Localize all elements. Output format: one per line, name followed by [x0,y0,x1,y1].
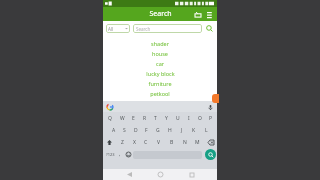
staticText: T [154,115,157,122]
button[interactable]: Emoji [124,148,133,161]
button[interactable]: M [191,136,204,148]
staticText: Search [149,9,172,19]
staticText: F [145,127,148,134]
button[interactable]: Voice input [206,103,214,111]
staticText: Q [108,115,112,122]
staticText: O [198,115,202,122]
button[interactable]: house [103,48,217,58]
staticText: K [192,127,196,134]
button[interactable]: V [152,136,165,148]
button[interactable]: D [130,124,141,136]
staticText: D [134,127,138,134]
button[interactable]: ?123 [104,148,116,161]
button[interactable]: K [188,124,200,136]
button[interactable]: Ad tab [212,94,219,103]
staticText: N [183,139,187,146]
button[interactable]: Cart [193,10,202,19]
button[interactable]: Google [106,103,114,111]
staticText: All [108,26,114,32]
staticText: shader [151,40,169,47]
staticText: B [170,139,174,146]
staticText: J [181,127,183,134]
staticText: L [205,127,208,134]
button[interactable]: I [183,112,194,124]
staticText: E [132,115,135,122]
staticText: R [143,115,147,122]
button[interactable]: T [150,112,161,124]
staticText: Search [136,26,151,32]
staticText: house [152,50,168,57]
button[interactable]: Z [116,136,128,148]
staticText: ?123 [106,152,115,157]
button[interactable]: lucky block [103,68,217,78]
button[interactable]: E [128,112,139,124]
button[interactable]: L [200,124,212,136]
staticText: Y [165,115,168,122]
button[interactable]: Search [133,24,202,33]
staticText: V [157,139,161,146]
button[interactable]: , [116,148,124,161]
staticText: H [168,127,172,134]
staticText: C [144,139,148,146]
button[interactable]: Home [154,169,166,180]
button[interactable]: J [176,124,188,136]
staticText: furniture [148,80,172,87]
button[interactable]: H [164,124,176,136]
button[interactable]: X [128,136,140,148]
button[interactable]: More options [205,10,214,19]
staticText: lucky block [146,70,175,77]
button[interactable]: C [140,136,152,148]
button[interactable]: All [106,24,130,33]
staticText: , [119,151,121,158]
button[interactable]: Recent apps [186,169,198,180]
button[interactable]: A [108,124,119,136]
button[interactable]: B [165,136,178,148]
staticText: A [112,127,116,134]
button[interactable]: Q [104,112,116,124]
staticText: P [209,115,213,122]
button[interactable]: O [194,112,205,124]
button[interactable]: P [205,112,216,124]
staticText: M [195,139,200,146]
staticText: Z [121,139,124,146]
button[interactable]: Search [205,149,216,160]
staticText: X [133,139,136,146]
staticText: S [123,127,126,134]
button[interactable]: Shift [103,136,116,148]
button[interactable]: shader [103,38,217,48]
staticText: W [120,115,125,122]
button[interactable]: Y [161,112,172,124]
button[interactable]: Backspace [204,136,217,148]
button[interactable]: petkool [103,88,217,98]
button[interactable]: Search [205,24,214,33]
staticText: I [188,115,190,122]
staticText: car [156,60,164,67]
staticText: petkool [150,90,170,97]
button[interactable]: W [116,112,128,124]
button[interactable]: furniture [103,78,217,88]
button[interactable]: R [139,112,150,124]
button[interactable]: F [141,124,152,136]
button[interactable]: car [103,58,217,68]
button[interactable]: U [172,112,183,124]
staticText: U [176,115,180,122]
button[interactable]: N [178,136,191,148]
button[interactable]: Back [123,169,135,180]
button[interactable]: G [152,124,164,136]
staticText: G [156,127,160,134]
button[interactable]: S [119,124,130,136]
